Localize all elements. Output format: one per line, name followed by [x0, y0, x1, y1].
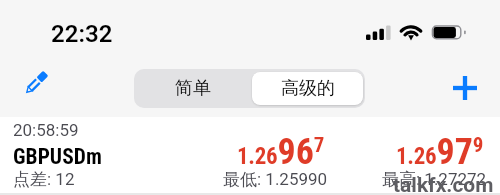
staticText: 最高: 1.27272	[382, 169, 487, 190]
button[interactable]: Add symbol	[442, 65, 487, 110]
staticText: 1.26979	[396, 131, 484, 173]
button[interactable]: 高级的	[252, 72, 363, 105]
staticText: 最低: 1.25990	[223, 169, 328, 190]
staticText: 简单	[175, 77, 211, 100]
button[interactable]: 简单	[134, 69, 252, 108]
staticText: 1.26967	[237, 131, 325, 173]
staticText: GBPUSDm	[13, 144, 102, 169]
button[interactable]: Edit watchlist	[14, 62, 60, 108]
staticText: 20:58:59	[13, 120, 79, 140]
button[interactable]: 20:58:59	[0, 117, 500, 195]
staticText: talkfx.com	[393, 173, 494, 195]
staticText: 点差: 12	[13, 169, 75, 190]
staticText: 22:32	[51, 20, 113, 48]
staticText: 高级的	[281, 77, 335, 100]
